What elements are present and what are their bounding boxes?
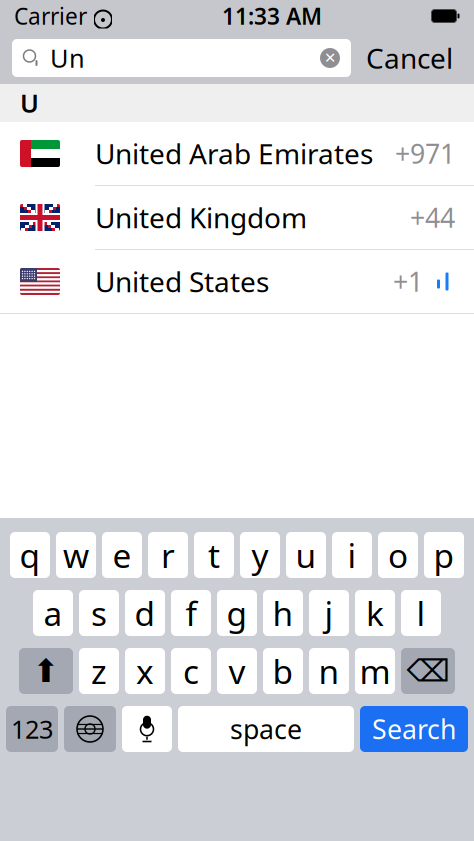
button[interactable]: Cancel	[351, 36, 468, 80]
button[interactable]: n	[309, 648, 349, 694]
button[interactable]: j	[309, 590, 349, 636]
button[interactable]: h	[263, 590, 303, 636]
button[interactable]: Next keyboard	[64, 706, 116, 752]
staticText: b	[272, 649, 293, 693]
staticText: l	[416, 591, 425, 635]
staticText: f	[185, 591, 196, 635]
button[interactable]: s	[79, 590, 119, 636]
button[interactable]: a	[33, 590, 73, 636]
button[interactable]: t	[194, 532, 234, 578]
staticText: h	[272, 591, 293, 635]
button[interactable]: c	[171, 648, 211, 694]
button[interactable]: v	[217, 648, 257, 694]
staticText: ⌫	[406, 654, 449, 688]
button[interactable]: g	[217, 590, 257, 636]
staticText: +1	[393, 264, 423, 299]
button[interactable]: Shift	[19, 648, 73, 694]
button[interactable]: 123	[6, 706, 58, 752]
staticText: u	[295, 533, 316, 577]
staticText: m	[359, 649, 390, 693]
staticText: U	[20, 86, 39, 120]
button[interactable]: r	[148, 532, 188, 578]
staticText: c	[183, 649, 199, 693]
staticText: United Kingdom	[95, 199, 307, 236]
button[interactable]: United Arab Emirates	[0, 122, 474, 186]
button[interactable]: q	[10, 532, 50, 578]
staticText: United States	[95, 263, 269, 300]
button[interactable]: United States	[0, 250, 474, 314]
button[interactable]: z	[79, 648, 119, 694]
button[interactable]: United Kingdom	[0, 186, 474, 250]
button[interactable]: Clear text	[309, 39, 351, 77]
staticText: +44	[410, 200, 455, 235]
button[interactable]: space	[178, 706, 354, 752]
button[interactable]: b	[263, 648, 303, 694]
button[interactable]: x	[125, 648, 165, 694]
staticText: w	[63, 533, 89, 577]
staticText: d	[134, 591, 155, 635]
staticText: 123	[11, 712, 53, 746]
button[interactable]: p	[424, 532, 464, 578]
staticText: ✕	[324, 50, 336, 66]
staticText: y	[251, 533, 268, 577]
staticText: n	[318, 649, 339, 693]
staticText: e	[112, 533, 131, 577]
staticText: g	[226, 591, 247, 635]
button[interactable]: e	[102, 532, 142, 578]
button[interactable]: l	[401, 590, 441, 636]
staticText: +971	[395, 136, 455, 171]
staticText: a	[43, 591, 62, 635]
staticText: z	[91, 649, 107, 693]
staticText: ⬆	[32, 653, 59, 689]
button[interactable]: Dictation	[122, 706, 172, 752]
staticText: Un	[50, 41, 85, 75]
button[interactable]: f	[171, 590, 211, 636]
staticText: p	[433, 533, 454, 577]
staticText: x	[136, 649, 154, 693]
button[interactable]: i	[332, 532, 372, 578]
button[interactable]: k	[355, 590, 395, 636]
staticText: i	[347, 533, 356, 577]
staticText: Search	[372, 711, 456, 747]
staticText: United Arab Emirates	[95, 135, 373, 172]
staticText: v	[228, 649, 245, 693]
button[interactable]: w	[56, 532, 96, 578]
staticText: j	[324, 591, 333, 635]
staticText: space	[230, 711, 302, 747]
button[interactable]: o	[378, 532, 418, 578]
staticText: Carrier	[14, 1, 87, 31]
staticText: s	[91, 591, 107, 635]
staticText: k	[366, 591, 384, 635]
button[interactable]: u	[286, 532, 326, 578]
button[interactable]: Search	[360, 706, 468, 752]
button[interactable]: y	[240, 532, 280, 578]
staticText: o	[388, 533, 408, 577]
button[interactable]: m	[355, 648, 395, 694]
button[interactable]: Delete	[401, 648, 455, 694]
staticText: r	[161, 533, 175, 577]
button[interactable]: d	[125, 590, 165, 636]
staticText: q	[19, 533, 40, 577]
staticText: t	[208, 533, 220, 577]
staticText: 11:33 AM	[222, 1, 322, 31]
staticText: Cancel	[366, 39, 453, 77]
